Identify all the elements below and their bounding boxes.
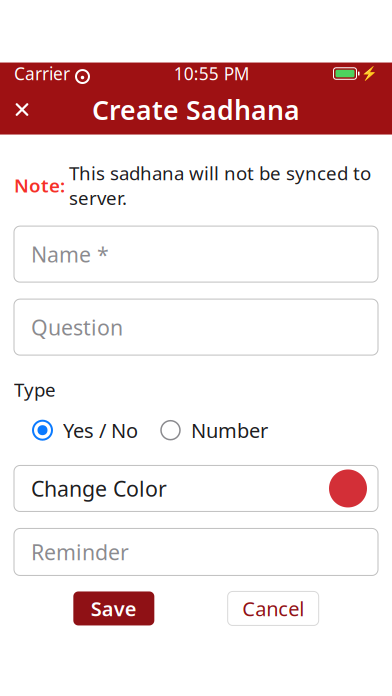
button[interactable]: Close xyxy=(0,87,44,131)
staticText: 10:55 PM xyxy=(174,62,250,85)
staticText: Note: xyxy=(14,173,65,198)
button[interactable]: Question xyxy=(14,299,378,355)
staticText: This sadhana will not be synced to serve… xyxy=(69,160,371,210)
button[interactable]: Cancel xyxy=(228,591,319,625)
staticText: Number xyxy=(191,417,268,443)
staticText: Reminder xyxy=(31,538,129,566)
button[interactable]: Save xyxy=(73,591,154,625)
button[interactable]: Number xyxy=(160,413,268,447)
button[interactable]: Change Color xyxy=(14,465,378,511)
staticText: Carrier xyxy=(14,62,70,85)
staticText: Create Sadhana xyxy=(92,92,300,127)
staticText: Question xyxy=(31,313,123,341)
staticText: Type xyxy=(14,377,56,402)
button[interactable]: Yes / No xyxy=(32,413,138,447)
button[interactable]: Reminder xyxy=(14,528,378,575)
staticText: Yes / No xyxy=(63,417,138,443)
staticText: Cancel xyxy=(242,595,304,622)
button[interactable]: Name * xyxy=(14,226,378,282)
staticText: Save xyxy=(91,595,137,622)
staticText: Change Color xyxy=(31,474,167,503)
staticText: Name * xyxy=(31,240,109,268)
staticText: ⚡ xyxy=(361,66,378,81)
